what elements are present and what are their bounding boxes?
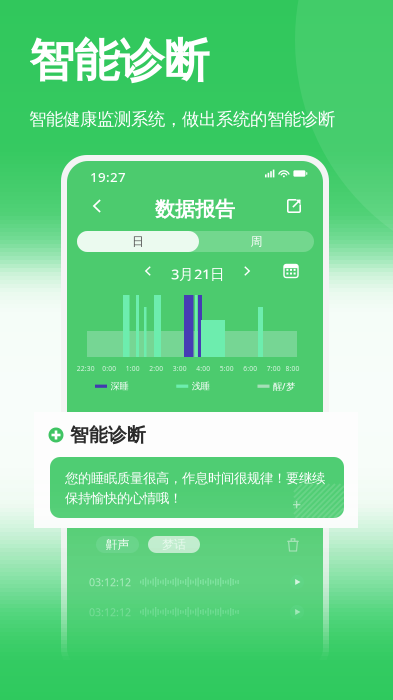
- staticText: 日: [132, 234, 144, 249]
- staticText: 智能诊断: [29, 33, 209, 89]
- staticText: 3:00: [173, 364, 187, 373]
- button[interactable]: 后一天: [237, 262, 257, 280]
- staticText: 1:00: [126, 364, 140, 373]
- staticText: 智能诊断: [70, 423, 146, 446]
- staticText: 数据报告: [155, 197, 235, 222]
- staticText: 鼾声: [105, 537, 129, 552]
- staticText: 2:00: [149, 364, 163, 373]
- button[interactable]: 分享: [279, 191, 309, 221]
- staticText: 0:00: [102, 364, 116, 373]
- staticText: 3月21日: [171, 264, 225, 283]
- staticText: 梦话: [162, 537, 186, 552]
- staticText: 醒/梦: [273, 380, 295, 392]
- button[interactable]: 删除: [283, 535, 303, 555]
- staticText: 19:27: [90, 168, 126, 186]
- staticText: 深睡: [110, 380, 128, 392]
- staticText: 7:00: [267, 364, 281, 373]
- staticText: 浅睡: [192, 380, 210, 392]
- staticText: 4:00: [196, 364, 210, 373]
- button[interactable]: 前一天: [138, 262, 158, 280]
- staticText: 03:12:12: [89, 605, 131, 619]
- button[interactable]: 梦话: [148, 536, 200, 553]
- button[interactable]: 返回: [82, 191, 112, 221]
- staticText: 03:12:12: [89, 575, 131, 589]
- button[interactable]: 周: [199, 231, 314, 252]
- staticText: 22:30: [77, 364, 95, 373]
- staticText: 8:00: [285, 364, 299, 373]
- button[interactable]: 播放录音: [287, 602, 307, 622]
- button[interactable]: 选择日期: [280, 261, 302, 281]
- button[interactable]: 日: [77, 231, 199, 252]
- staticText: 您的睡眠质量很高，作息时间很规律！要继续: [65, 470, 325, 486]
- button[interactable]: 播放录音: [287, 572, 307, 592]
- staticText: 智能健康监测系统，做出系统的智能诊断: [29, 109, 335, 130]
- staticText: 周: [250, 234, 262, 249]
- staticText: 保持愉快的心情哦！: [65, 490, 182, 506]
- button[interactable]: 鼾声: [96, 536, 139, 553]
- staticText: 6:00: [243, 364, 257, 373]
- staticText: 5:00: [220, 364, 234, 373]
